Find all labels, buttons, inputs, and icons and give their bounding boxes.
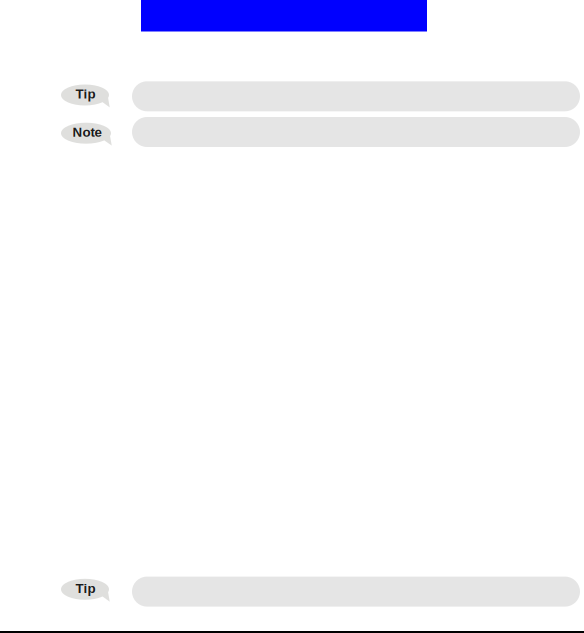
- button[interactable]: Note: [0, 117, 580, 151]
- staticText: Tip: [75, 87, 95, 101]
- button[interactable]: Tip: [0, 577, 580, 611]
- button[interactable]: Tip: [0, 81, 580, 115]
- staticText: Note: [72, 125, 101, 140]
- staticText: Tip: [75, 581, 95, 596]
